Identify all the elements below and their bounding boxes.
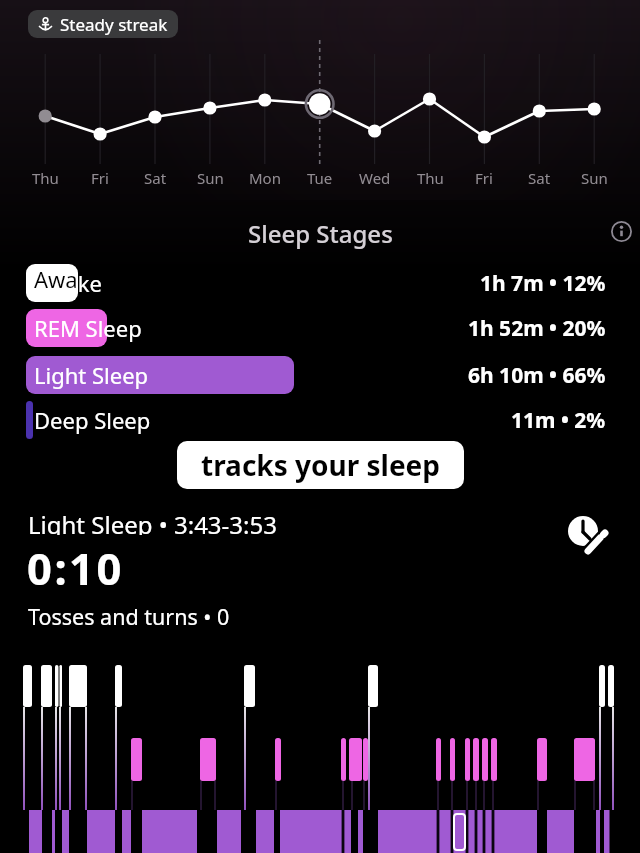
button[interactable] [610,220,633,243]
staticText: Wed [359,168,391,188]
staticText: Steady streak [60,13,168,36]
staticText: Tosses and turns • 0 [28,602,230,629]
button[interactable] [564,512,610,558]
staticText: Sun [581,168,608,188]
staticText: 0:10 [27,538,124,597]
staticText: tracks your sleep [201,446,441,484]
staticText: Fri [475,168,493,188]
staticText: Thu [417,168,444,188]
button[interactable]: tracks your sleep [177,441,464,489]
staticText: 6h 10m • 66% [468,361,606,390]
staticText: REM Sleep [34,313,142,343]
staticText: 11m • 2% [511,406,606,435]
staticText: Sun [197,168,224,188]
staticText: Fri [91,168,109,188]
staticText: Awake [78,268,102,298]
staticText: Sat [144,168,167,188]
staticText: Awake [34,264,78,302]
staticText: Light Sleep [34,360,149,390]
staticText: Tue [307,168,333,188]
staticText: Light Sleep • 3:43-3:53 [28,508,277,535]
staticText: Sat [528,168,551,188]
staticText: Thu [32,168,59,188]
staticText: 1h 7m • 12% [480,269,606,298]
staticText: Sleep Stages [248,217,393,250]
staticText: 1h 52m • 20% [468,314,606,343]
staticText: Mon [249,168,281,188]
staticText: Deep Sleep [34,405,151,435]
button[interactable]: Steady streak [28,10,178,38]
